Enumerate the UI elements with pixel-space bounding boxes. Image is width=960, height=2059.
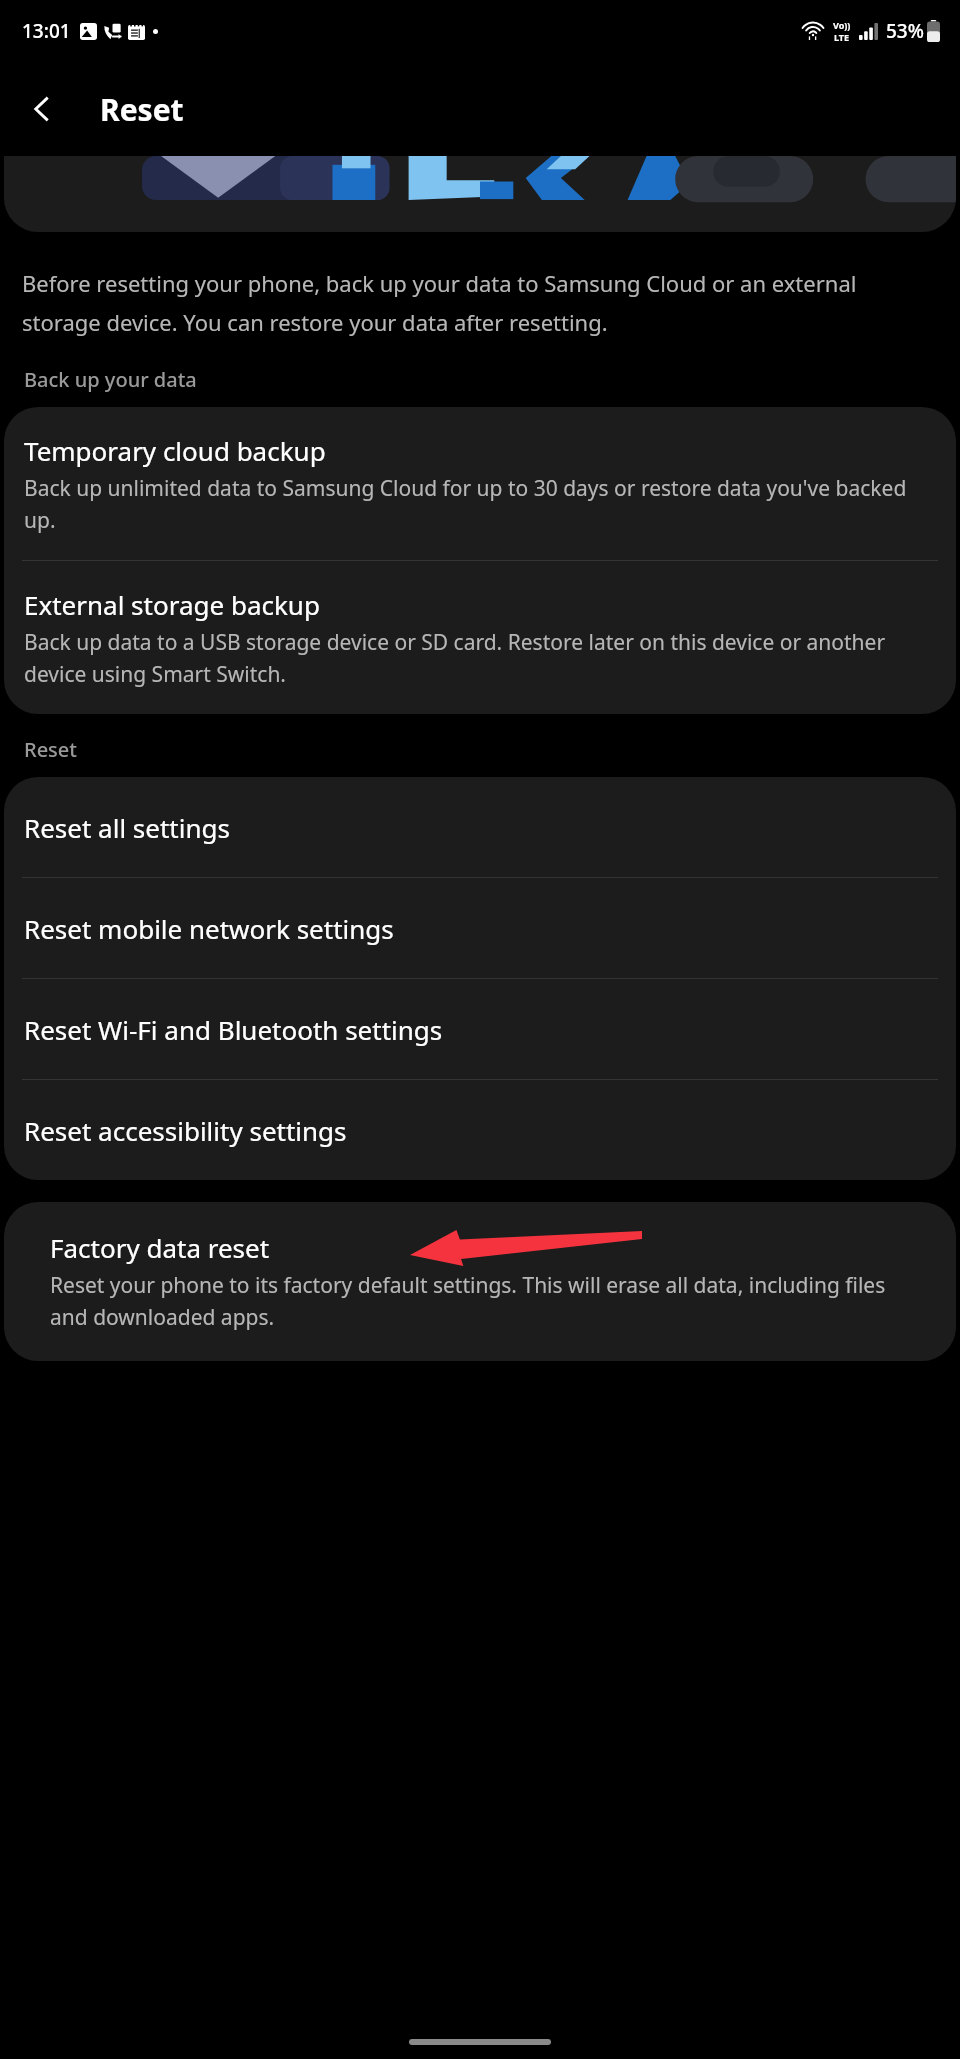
button[interactable]: Factory data reset [4,1202,956,1361]
staticText: Vo)) [833,19,851,31]
button[interactable]: Reset mobile network settings [4,878,956,978]
staticText: Back up unlimited data to Samsung Cloud … [24,474,930,534]
staticText: Back up your data [24,366,936,393]
button[interactable]: Reset all settings [4,777,956,877]
staticText: Reset mobile network settings [24,911,394,946]
staticText: 13:01 [22,18,71,44]
staticText: Before resetting your phone, back up you… [22,268,938,338]
staticText: Reset [24,736,936,763]
staticText: Temporary cloud backup [24,433,326,468]
staticText: 53% [886,18,924,44]
staticText: Factory data reset [50,1230,270,1265]
staticText: Reset [100,89,184,130]
staticText: LTE [834,31,850,43]
button[interactable]: Reset accessibility settings [4,1080,956,1180]
staticText: Reset accessibility settings [24,1113,347,1148]
button[interactable]: Temporary cloud backup [4,407,956,560]
button[interactable]: Reset Wi-Fi and Bluetooth settings [4,979,956,1079]
staticText: Reset your phone to its factory default … [50,1271,920,1331]
staticText: Reset all settings [24,810,230,845]
button[interactable]: Back [14,81,70,137]
button[interactable]: External storage backup [4,561,956,714]
staticText: Back up data to a USB storage device or … [24,628,930,688]
staticText: Reset Wi-Fi and Bluetooth settings [24,1012,443,1047]
staticText: External storage backup [24,587,320,622]
